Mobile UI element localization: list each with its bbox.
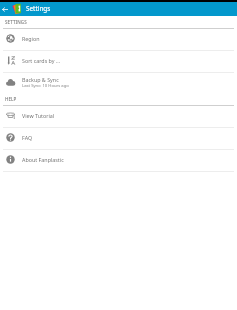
button[interactable]: FAQ	[0, 128, 237, 149]
button[interactable]: Backup & Sync	[0, 73, 237, 93]
button[interactable]: Sort cards by ...	[0, 51, 237, 72]
staticText: Region	[22, 35, 40, 42]
staticText: View Tutorial	[22, 112, 55, 119]
button[interactable]: Region	[0, 29, 237, 50]
staticText: FAQ	[22, 134, 33, 141]
staticText: Last Sync: 10 Hours ago	[22, 83, 69, 89]
button[interactable]: Navigate up	[0, 3, 11, 15]
button[interactable]: About Fanplastic	[0, 150, 237, 171]
staticText: HELP	[5, 96, 17, 102]
staticText: Settings	[26, 4, 51, 13]
staticText: About Fanplastic	[22, 156, 64, 163]
staticText: Backup & Sync	[22, 76, 59, 83]
staticText: Sort cards by ...	[22, 57, 61, 64]
staticText: SETTINGS	[5, 19, 27, 25]
button[interactable]: View Tutorial	[0, 106, 237, 127]
